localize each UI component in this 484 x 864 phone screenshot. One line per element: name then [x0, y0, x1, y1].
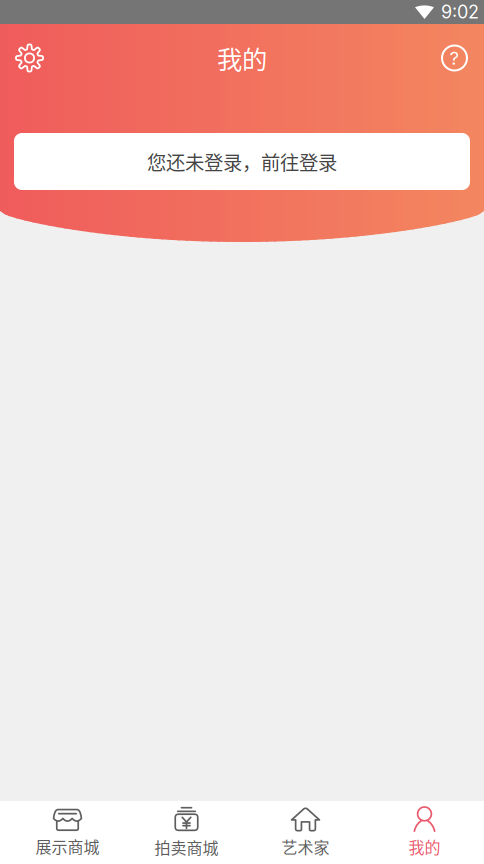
- button[interactable]: 拍卖商城: [127, 801, 246, 864]
- staticText: 拍卖商城: [154, 835, 218, 859]
- staticText: 艺术家: [281, 835, 329, 858]
- staticText: 我的: [408, 835, 440, 858]
- staticText: ?: [449, 47, 459, 69]
- button[interactable]: 展示商城: [8, 801, 127, 864]
- staticText: 您还未登录，前往登录: [147, 147, 337, 175]
- button[interactable]: Help: [441, 36, 484, 79]
- staticText: 展示商城: [35, 834, 99, 858]
- button[interactable]: 我的: [365, 801, 484, 864]
- button[interactable]: Settings: [0, 36, 43, 79]
- staticText: 我的: [217, 40, 267, 76]
- button[interactable]: 艺术家: [246, 801, 365, 864]
- button[interactable]: 您还未登录，前往登录: [14, 133, 470, 190]
- staticText: 9:02: [441, 1, 479, 23]
